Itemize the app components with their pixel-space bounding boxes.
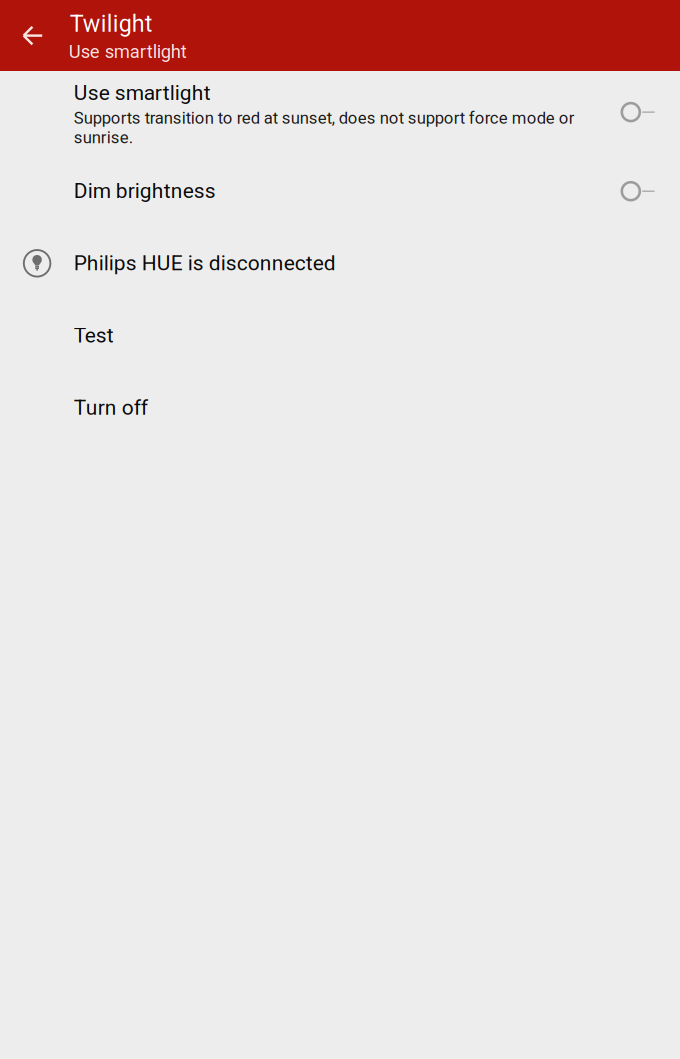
button[interactable]: Back <box>0 0 64 71</box>
button[interactable]: Test <box>0 302 680 374</box>
button[interactable]: Use smartlight <box>0 71 680 158</box>
staticText: Use smartlight <box>69 41 187 63</box>
staticText: Supports transition to red at sunset, do… <box>74 108 575 147</box>
button[interactable]: Dim brightness <box>0 158 680 230</box>
staticText: Philips HUE is disconnected <box>74 251 336 275</box>
staticText: Twilight <box>70 10 153 37</box>
staticText: Dim brightness <box>74 179 216 203</box>
staticText: Turn off <box>74 395 148 420</box>
staticText: Test <box>74 323 114 348</box>
button[interactable]: Turn off <box>0 374 680 447</box>
button[interactable]: Philips HUE is disconnected <box>0 230 680 302</box>
staticText: Use smartlight <box>74 80 211 105</box>
